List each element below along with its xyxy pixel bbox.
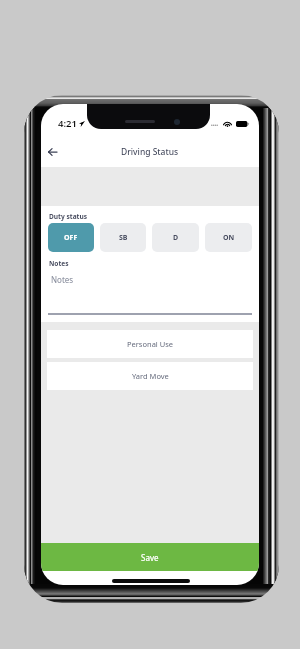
- button[interactable]: Yard Move: [47, 362, 253, 390]
- staticText: ON: [223, 233, 235, 243]
- button[interactable]: Back: [42, 142, 62, 162]
- staticText: Personal Use: [127, 339, 174, 349]
- staticText: Notes: [51, 274, 74, 285]
- button[interactable]: ON: [205, 223, 252, 252]
- staticText: Notes: [49, 259, 69, 268]
- staticText: D: [173, 233, 179, 243]
- staticText: Save: [141, 552, 159, 563]
- button[interactable]: Save: [41, 543, 259, 571]
- staticText: Driving Status: [121, 146, 179, 158]
- button[interactable]: SB: [100, 223, 146, 252]
- staticText: 4:21: [58, 117, 77, 130]
- button[interactable]: Personal Use: [47, 330, 253, 358]
- button[interactable]: OFF: [48, 223, 94, 252]
- staticText: OFF: [64, 233, 78, 243]
- staticText: SB: [119, 233, 128, 243]
- staticText: Yard Move: [132, 371, 169, 381]
- staticText: Duty status: [49, 212, 88, 221]
- button[interactable]: D: [152, 223, 199, 252]
